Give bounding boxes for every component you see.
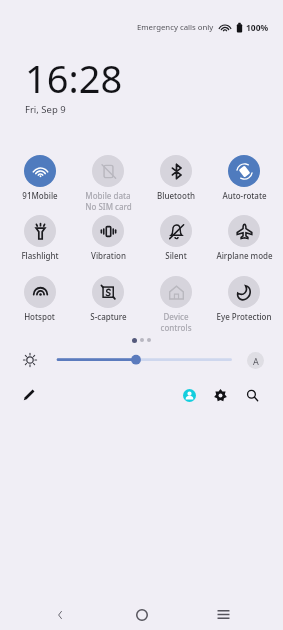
staticText: 16:28 <box>25 52 123 104</box>
staticText: S-capture <box>90 311 127 322</box>
button[interactable]: Mobile data <box>74 155 142 212</box>
staticText: Auto-rotate <box>222 190 267 201</box>
button[interactable]: Recents <box>206 597 240 630</box>
button[interactable]: Eye Protection <box>210 276 278 322</box>
button[interactable]: Auto-rotate <box>210 155 278 201</box>
staticText: Emergency calls only <box>137 22 214 33</box>
staticText: A <box>253 355 259 367</box>
staticText: Fri, Sep 9 <box>25 103 66 116</box>
button[interactable]: Vibration <box>74 215 142 261</box>
staticText: Mobile data <box>85 190 131 201</box>
staticText: Eye Protection <box>216 311 272 322</box>
staticText: Flashlight <box>21 250 59 261</box>
button[interactable]: Flashlight <box>5 215 74 261</box>
button[interactable]: Device <box>142 276 210 333</box>
button[interactable]: Search <box>243 386 261 404</box>
button[interactable]: 91Mobile <box>5 155 74 201</box>
button[interactable]: Edit <box>20 385 38 403</box>
button[interactable]: Airplane mode <box>210 215 278 261</box>
staticText: No SIM card <box>85 201 132 212</box>
button[interactable]: Hotspot <box>5 276 74 322</box>
button[interactable]: Home <box>125 597 159 630</box>
button[interactable]: S-capture <box>74 276 142 322</box>
staticText: 100% <box>246 22 269 34</box>
button[interactable]: Auto brightness <box>247 352 264 369</box>
staticText: Hotspot <box>24 311 55 322</box>
staticText: Bluetooth <box>157 190 195 201</box>
staticText: Vibration <box>91 250 126 261</box>
button[interactable]: Brightness <box>20 350 39 369</box>
button[interactable]: User <box>180 386 198 404</box>
button[interactable]: Brightness slider <box>52 350 238 370</box>
button[interactable]: Settings <box>211 386 229 404</box>
staticText: controls <box>160 322 192 333</box>
button[interactable]: Silent <box>142 215 210 261</box>
staticText: Device <box>163 311 189 322</box>
button[interactable]: Bluetooth <box>142 155 210 201</box>
staticText: 91Mobile <box>22 190 58 201</box>
staticText: Silent <box>165 250 187 261</box>
staticText: Airplane mode <box>216 250 273 261</box>
button[interactable]: Back <box>43 597 77 630</box>
